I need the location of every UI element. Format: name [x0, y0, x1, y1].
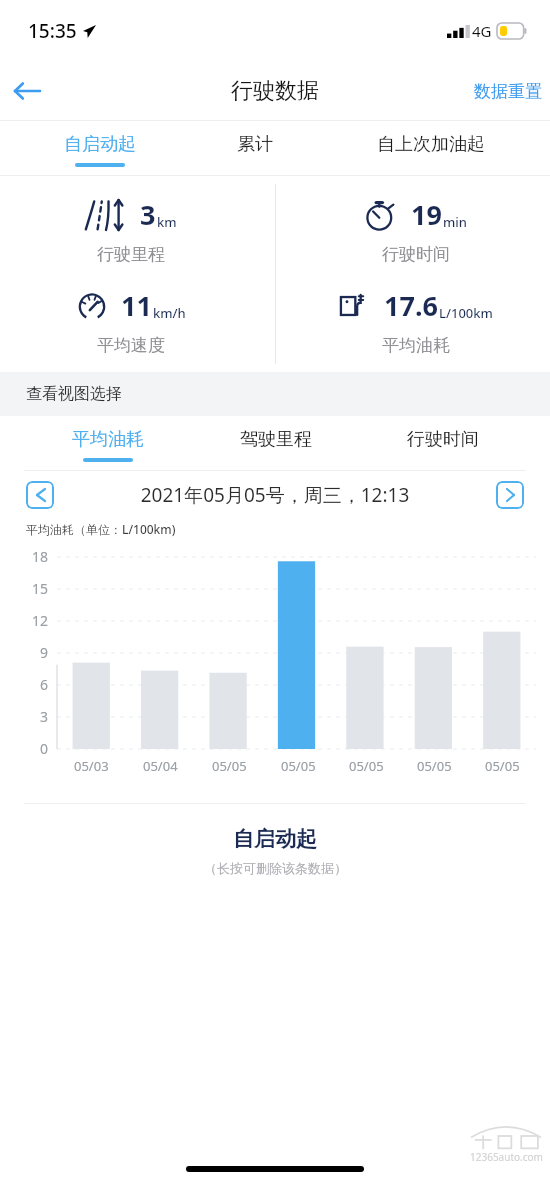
staticText: 驾驶里程 — [240, 428, 312, 451]
button[interactable]: 累计 — [177, 121, 333, 175]
staticText: km — [157, 213, 177, 231]
staticText: 平均油耗 — [72, 428, 144, 451]
staticText: 05/04 — [143, 757, 178, 775]
staticText: 05/05 — [349, 757, 384, 775]
staticText: 查看视图选择 — [26, 384, 122, 404]
staticText: 3 — [140, 196, 156, 233]
staticText: 平均油耗（单位：L/100km) — [26, 521, 176, 537]
button[interactable]: 驾驶里程 — [192, 416, 359, 470]
staticText: 自上次加油起 — [377, 133, 485, 156]
staticText: 0 — [24, 739, 48, 758]
staticText: 行驶时间 — [382, 244, 450, 265]
button[interactable]: 自上次加油起 — [333, 121, 528, 175]
button[interactable]: 行驶时间 — [359, 416, 526, 470]
staticText: 平均速度 — [97, 335, 165, 356]
staticText: 05/05 — [485, 757, 520, 775]
staticText: 3 — [24, 707, 48, 726]
button[interactable]: 平均油耗 — [24, 416, 192, 470]
staticText: 05/05 — [281, 757, 316, 775]
staticText: 19 — [411, 196, 442, 233]
staticText: 行驶时间 — [407, 428, 479, 451]
button[interactable]: Next — [496, 481, 524, 509]
staticText: 05/05 — [212, 757, 247, 775]
staticText: 9 — [24, 643, 48, 662]
staticText: 15:35 — [28, 18, 77, 44]
staticText: 11 — [121, 287, 152, 324]
staticText: 自启动起 — [233, 826, 317, 852]
staticText: 17.6 — [384, 287, 438, 324]
staticText: 2021年05月05号，周三，12:13 — [54, 482, 496, 508]
staticText: 平均油耗 — [382, 335, 450, 356]
staticText: 12 — [24, 611, 48, 630]
staticText: 15 — [24, 579, 48, 598]
staticText: 05/03 — [74, 757, 109, 775]
staticText: 行驶里程 — [97, 244, 165, 265]
staticText: （长按可删除该条数据） — [204, 860, 347, 876]
staticText: min — [443, 213, 467, 231]
button[interactable]: 自启动起 — [22, 121, 177, 175]
staticText: 05/05 — [417, 757, 452, 775]
staticText: 4G — [472, 21, 492, 41]
staticText: 行驶数据 — [231, 77, 319, 105]
button[interactable]: Previous — [26, 481, 54, 509]
staticText: 18 — [24, 547, 48, 566]
button[interactable]: Back — [0, 64, 54, 118]
staticText: 6 — [24, 675, 48, 694]
staticText: L/100km — [439, 304, 493, 322]
staticText: 自启动起 — [64, 133, 136, 156]
staticText: 数据重置 — [474, 81, 542, 102]
staticText: 12365auto.com — [470, 1150, 543, 1164]
staticText: km/h — [153, 304, 186, 322]
button[interactable]: 数据重置 — [466, 69, 550, 114]
staticText: 累计 — [237, 133, 273, 156]
